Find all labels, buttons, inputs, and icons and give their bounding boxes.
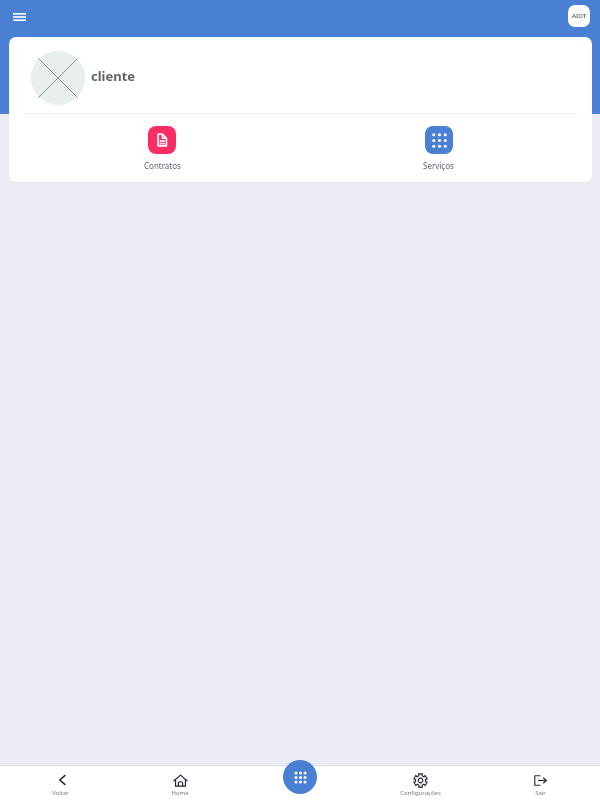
button[interactable]: Voltar [0, 766, 120, 800]
button[interactable]: Apps [283, 760, 317, 794]
button[interactable]: Menu [6, 4, 32, 30]
staticText: Configurações [400, 789, 441, 797]
staticText: cliente [91, 67, 136, 85]
staticText: Contratos [144, 160, 181, 171]
button[interactable]: Contratos [24, 116, 300, 180]
button[interactable]: Serviços [300, 116, 577, 180]
button[interactable]: Configurações [360, 766, 480, 800]
button[interactable]: Home [120, 766, 240, 800]
button[interactable]: Sair [480, 766, 600, 800]
staticText: Sair [535, 789, 546, 797]
staticText: Voltar [52, 789, 69, 797]
staticText: Serviços [423, 160, 454, 171]
staticText: Home [171, 789, 189, 797]
staticText: AIOT [572, 12, 587, 20]
button[interactable]: AIOT [568, 5, 590, 27]
